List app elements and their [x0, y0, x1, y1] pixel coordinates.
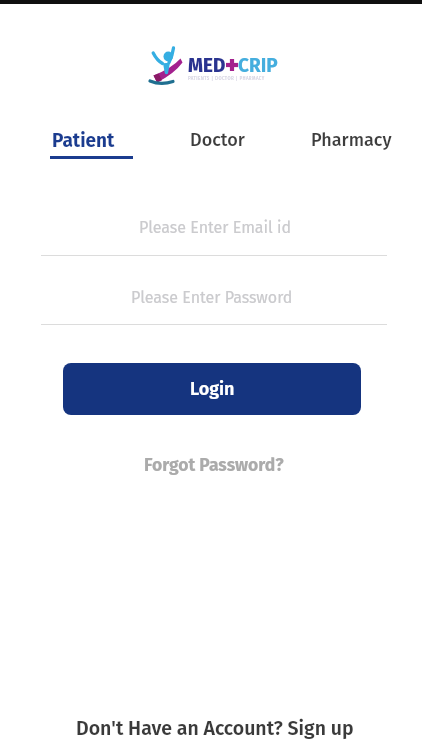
- button[interactable]: Don't Have an Account? Sign up: [76, 717, 354, 740]
- staticText: Forgot Password?: [144, 455, 284, 476]
- button[interactable]: Forgot Password?: [144, 455, 284, 476]
- staticText: CRIP: [238, 54, 278, 77]
- button[interactable]: Login: [63, 363, 361, 415]
- staticText: Patient: [52, 129, 115, 152]
- staticText: Login: [190, 378, 235, 400]
- staticText: MED: [188, 54, 226, 77]
- button[interactable]: Doctor: [177, 127, 257, 153]
- button[interactable]: Patient: [43, 127, 123, 153]
- staticText: Pharmacy: [311, 129, 392, 151]
- button[interactable]: Pharmacy: [310, 127, 392, 153]
- button[interactable]: Please Enter Email id: [41, 212, 387, 256]
- staticText: Doctor: [190, 129, 245, 151]
- staticText: Please Enter Email id: [139, 218, 292, 237]
- staticText: PATIENTS | DOCTOR | PHARMACY: [188, 76, 265, 81]
- staticText: Don't Have an Account? Sign up: [76, 717, 354, 740]
- staticText: Please Enter Password: [131, 288, 293, 307]
- button[interactable]: Please Enter Password: [41, 283, 387, 325]
